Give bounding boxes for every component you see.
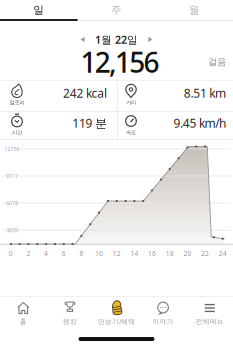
staticText: 22 — [201, 249, 209, 258]
staticText: 14 — [130, 249, 138, 258]
button[interactable]: 만보기/혜택 — [93, 298, 139, 332]
staticText: 속도 — [126, 129, 136, 136]
staticText: 6 — [62, 249, 66, 258]
staticText: 0 — [9, 249, 13, 258]
button[interactable]: 주 — [78, 0, 155, 20]
staticText: 만보기/혜택 — [98, 317, 135, 326]
button[interactable]: 랭킹 — [47, 298, 93, 332]
staticText: 거리 — [126, 99, 136, 106]
staticText: 16 — [148, 249, 156, 258]
button[interactable]: 월 — [155, 0, 233, 20]
button[interactable]: 이야기 — [140, 298, 186, 332]
staticText: 칼로리 — [9, 99, 24, 106]
staticText: 12,156 — [80, 43, 159, 81]
staticText: 이야기 — [153, 317, 174, 326]
button[interactable]: 전체메뉴 — [187, 298, 233, 332]
staticText: 일 — [33, 3, 44, 16]
staticText: 18 — [166, 249, 174, 258]
staticText: 119 분 — [72, 115, 107, 131]
staticText: 걸음 — [208, 56, 226, 68]
staticText: 242 kcal — [63, 85, 107, 101]
button[interactable]: 다음 날짜 — [143, 34, 157, 45]
staticText: 1월 22일 — [95, 32, 138, 47]
staticText: 20 — [183, 249, 191, 258]
staticText: 홈 — [20, 317, 27, 326]
staticText: 10 — [95, 249, 103, 258]
staticText: 9117 — [6, 172, 18, 180]
button[interactable]: 일 — [0, 0, 78, 20]
staticText: 9.45 km/h — [173, 115, 226, 131]
button[interactable]: 이전 날짜 — [76, 34, 90, 45]
staticText: 랭킹 — [63, 317, 77, 326]
staticText: 6078 — [6, 200, 18, 207]
staticText: 3039 — [6, 227, 18, 234]
staticText: 2 — [26, 249, 30, 258]
staticText: 시간 — [12, 129, 22, 136]
staticText: 8.51 km — [184, 85, 226, 101]
staticText: 24 — [219, 249, 227, 258]
staticText: 12156 — [4, 145, 19, 152]
staticText: 월 — [189, 3, 200, 16]
staticText: 8 — [79, 249, 83, 258]
staticText: 12 — [113, 249, 121, 258]
staticText: 4 — [44, 249, 48, 258]
staticText: 주 — [111, 3, 122, 16]
button[interactable]: 홈 — [0, 298, 46, 332]
staticText: 전체메뉴 — [196, 317, 224, 326]
